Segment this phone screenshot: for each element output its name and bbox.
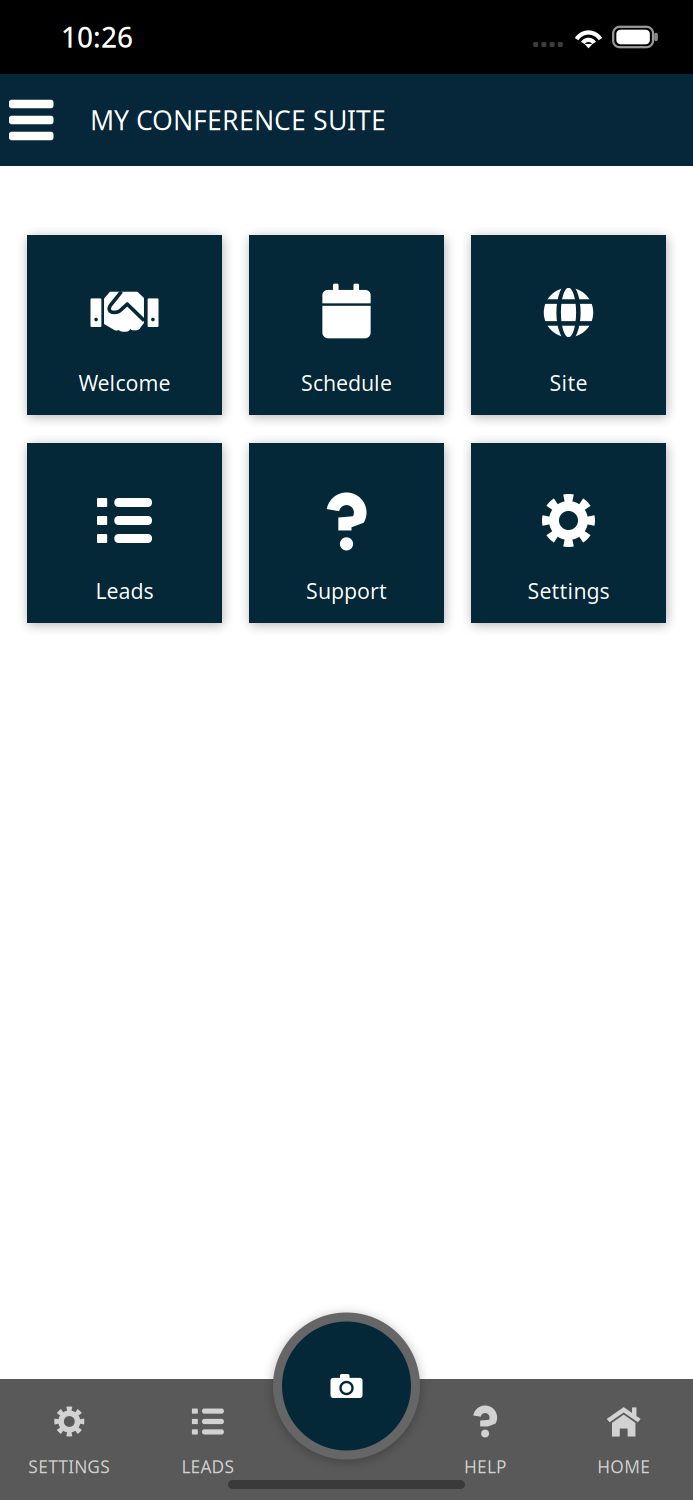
staticText: Leads: [95, 576, 153, 605]
staticText: 10:26: [61, 18, 133, 56]
button[interactable]: Support: [249, 443, 444, 623]
staticText: HELP: [464, 1455, 506, 1478]
button[interactable]: Leads: [27, 443, 222, 623]
button[interactable]: Capture: [273, 1312, 420, 1459]
button[interactable]: Site: [471, 235, 666, 415]
button[interactable]: Settings: [471, 443, 666, 623]
staticText: Support: [306, 576, 387, 605]
button[interactable]: LEADS: [139, 1379, 277, 1500]
staticText: HOME: [597, 1455, 650, 1478]
button[interactable]: SETTINGS: [0, 1379, 139, 1500]
staticText: LEADS: [181, 1455, 234, 1478]
staticText: SETTINGS: [28, 1455, 110, 1478]
staticText: MY CONFERENCE SUITE: [90, 102, 386, 138]
staticText: Site: [549, 368, 587, 397]
button[interactable]: Welcome: [27, 235, 222, 415]
staticText: Settings: [527, 576, 609, 605]
button[interactable]: HELP: [416, 1379, 554, 1500]
staticText: Schedule: [301, 368, 392, 397]
staticText: Welcome: [78, 368, 170, 397]
button[interactable]: Schedule: [249, 235, 444, 415]
button[interactable]: Menu: [0, 74, 62, 166]
button[interactable]: HOME: [554, 1379, 693, 1500]
